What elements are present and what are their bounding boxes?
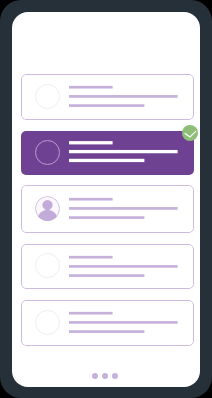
button[interactable]	[21, 185, 194, 233]
button[interactable]: Selected	[182, 125, 198, 141]
button[interactable]	[21, 300, 194, 346]
button[interactable]: Page indicator	[92, 373, 118, 379]
button[interactable]	[21, 131, 194, 175]
button[interactable]	[21, 74, 194, 120]
button[interactable]	[21, 244, 194, 289]
